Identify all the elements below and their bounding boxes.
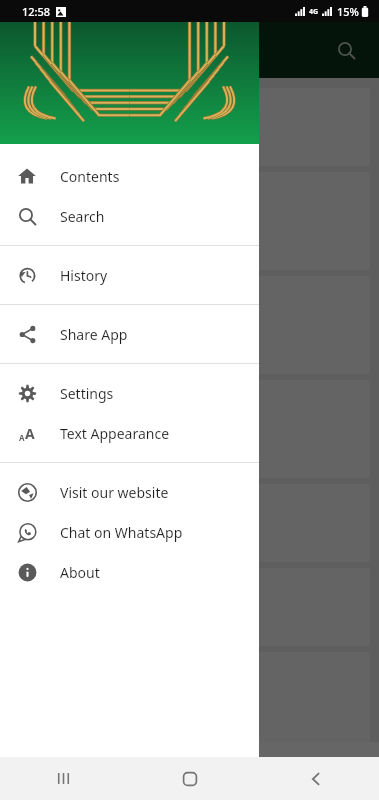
button[interactable]: Home	[127, 757, 253, 800]
staticText: 15%	[337, 4, 359, 19]
staticText: Visit our website	[60, 483, 169, 502]
button[interactable]: Du'a (ng	[9, 568, 370, 646]
staticText: Du'a Ibrahima	[21, 116, 154, 139]
staticText: Contents	[60, 167, 120, 186]
button[interactable]: Du'a Usman mee	[9, 484, 370, 562]
button[interactable]: Settings	[0, 373, 259, 413]
button[interactable]: A	[0, 413, 259, 453]
button[interactable]: Search	[325, 29, 367, 71]
staticText: Settings	[60, 384, 114, 403]
button[interactable]: Visit our website	[0, 472, 259, 512]
button[interactable]: About	[0, 552, 259, 592]
staticText: 4G	[309, 7, 319, 17]
button[interactable]: Recent apps	[0, 757, 127, 800]
staticText: Du'a Usman mee	[21, 512, 164, 535]
staticText: Search	[60, 207, 105, 226]
staticText: Du'a Usman	[21, 418, 123, 441]
button[interactable]: History	[0, 255, 259, 295]
staticText: History	[60, 266, 108, 285]
staticText: Text Appearance	[60, 424, 170, 443]
button[interactable]	[9, 652, 370, 742]
staticText: About	[60, 563, 100, 582]
button[interactable]: Contents	[0, 156, 259, 196]
button[interactable]: Chat on WhatsApp	[0, 512, 259, 552]
staticText: 12:58	[22, 4, 51, 19]
staticText: Share App	[60, 325, 128, 344]
staticText: A	[19, 432, 25, 443]
staticText: Chat on WhatsApp	[60, 523, 183, 542]
button[interactable]: Du'a Ibrahima	[9, 88, 370, 166]
button[interactable]: Share App	[0, 314, 259, 354]
button[interactable]: Du'a Usman	[9, 380, 370, 478]
staticText: A	[25, 424, 35, 443]
button[interactable]: Search	[0, 196, 259, 236]
button[interactable]	[9, 172, 370, 270]
button[interactable]: Back	[253, 757, 379, 800]
button[interactable]	[9, 276, 370, 374]
